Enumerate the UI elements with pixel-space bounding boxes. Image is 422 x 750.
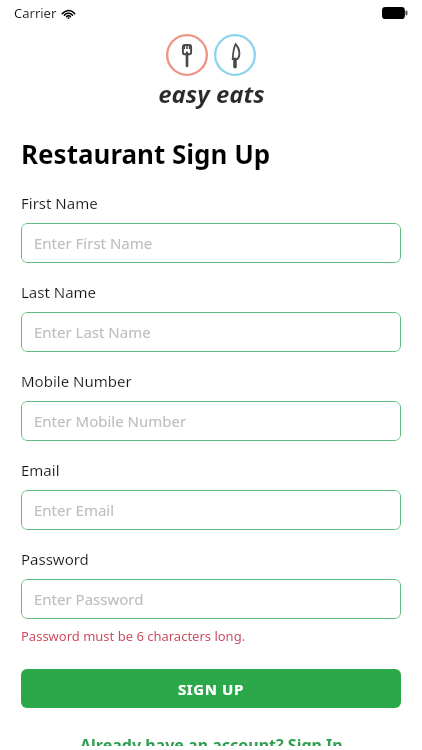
staticText: Enter Last Name xyxy=(34,322,151,342)
staticText: SIGN UP xyxy=(178,679,244,699)
staticText: Enter Email xyxy=(34,500,115,520)
button[interactable]: SIGN UP xyxy=(21,669,401,708)
button[interactable]: Enter Password xyxy=(21,579,401,619)
staticText: Mobile Number xyxy=(21,371,132,391)
staticText: Carrier xyxy=(14,4,57,22)
staticText: easy eats xyxy=(158,77,265,110)
staticText: Already have an account? Sign In xyxy=(80,734,343,746)
staticText: Enter Password xyxy=(34,589,144,609)
staticText: Password xyxy=(21,549,89,569)
staticText: Password must be 6 characters long. xyxy=(21,627,246,645)
staticText: Email xyxy=(21,460,60,480)
staticText: Restaurant Sign Up xyxy=(21,136,271,171)
button[interactable]: Enter Email xyxy=(21,490,401,530)
button[interactable]: Enter Last Name xyxy=(21,312,401,352)
button[interactable]: Already have an account? Sign In xyxy=(21,730,401,750)
staticText: Enter First Name xyxy=(34,233,153,253)
button[interactable]: Enter First Name xyxy=(21,223,401,263)
button[interactable]: Enter Mobile Number xyxy=(21,401,401,441)
staticText: Last Name xyxy=(21,282,97,302)
staticText: First Name xyxy=(21,193,98,213)
staticText: Enter Mobile Number xyxy=(34,411,187,431)
